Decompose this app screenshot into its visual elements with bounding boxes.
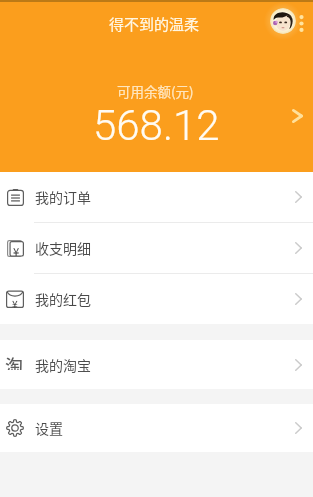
staticText: 我的淘宝 (35, 355, 91, 375)
staticText: 我的订单 (35, 187, 91, 207)
staticText: 我的红包 (35, 289, 91, 309)
button[interactable]: ¥ (0, 223, 313, 273)
button[interactable]: ¥ (0, 274, 313, 324)
button[interactable]: Balance details (284, 101, 310, 131)
staticText: 设置 (35, 418, 63, 438)
button[interactable]: 我的订单 (0, 172, 313, 222)
staticText: 得不到的温柔 (109, 13, 200, 35)
button[interactable]: More options (292, 6, 309, 38)
button[interactable]: 淘 (0, 340, 313, 389)
button[interactable]: 设置 (0, 404, 313, 452)
staticText: 淘 (5, 352, 23, 370)
staticText: 568.12 (93, 101, 220, 150)
staticText: ¥ (12, 296, 18, 310)
staticText: 收支明细 (35, 238, 91, 258)
staticText: ¥ (13, 243, 20, 259)
staticText: 可用余额(元) (117, 81, 194, 101)
button[interactable]: Profile picture (270, 8, 296, 34)
